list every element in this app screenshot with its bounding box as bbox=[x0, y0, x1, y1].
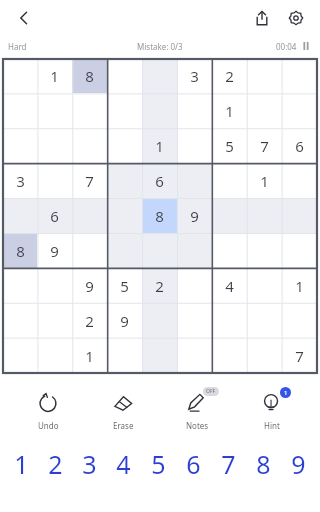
button[interactable]: Undo bbox=[16, 386, 80, 433]
button[interactable] bbox=[282, 303, 317, 338]
button[interactable]: 9 bbox=[107, 303, 142, 338]
button[interactable] bbox=[177, 338, 212, 373]
button[interactable] bbox=[282, 233, 317, 268]
button[interactable] bbox=[3, 268, 37, 303]
button[interactable]: 7 bbox=[211, 447, 246, 485]
button[interactable] bbox=[37, 268, 72, 303]
button[interactable] bbox=[212, 198, 247, 233]
button[interactable]: 5 bbox=[141, 447, 176, 485]
button[interactable] bbox=[177, 93, 212, 128]
button[interactable]: 6 bbox=[37, 198, 72, 233]
button[interactable]: 8 bbox=[246, 447, 281, 485]
button[interactable] bbox=[107, 93, 142, 128]
button[interactable] bbox=[37, 163, 72, 198]
button[interactable] bbox=[247, 303, 282, 338]
button[interactable]: 1 bbox=[240, 386, 304, 433]
button[interactable] bbox=[177, 128, 212, 163]
button[interactable]: 2 bbox=[212, 59, 247, 93]
button[interactable]: 3 bbox=[72, 447, 106, 485]
button[interactable] bbox=[3, 59, 37, 93]
button[interactable] bbox=[247, 338, 282, 373]
button[interactable]: 7 bbox=[72, 163, 107, 198]
button[interactable]: 1 bbox=[247, 163, 282, 198]
button[interactable] bbox=[247, 93, 282, 128]
button[interactable]: 8 bbox=[142, 198, 177, 233]
button[interactable] bbox=[177, 233, 212, 268]
button[interactable]: 1 bbox=[72, 338, 107, 373]
button[interactable] bbox=[107, 59, 142, 93]
button[interactable] bbox=[142, 59, 177, 93]
button[interactable] bbox=[247, 59, 282, 93]
staticText: Mistake: 0/3 bbox=[137, 41, 183, 52]
button[interactable] bbox=[282, 163, 317, 198]
button[interactable] bbox=[177, 163, 212, 198]
button[interactable]: Pause bbox=[300, 40, 312, 52]
button[interactable]: 9 bbox=[177, 198, 212, 233]
button[interactable] bbox=[3, 128, 37, 163]
button[interactable] bbox=[37, 93, 72, 128]
button[interactable]: 6 bbox=[142, 163, 177, 198]
button[interactable] bbox=[212, 163, 247, 198]
button[interactable]: Share bbox=[246, 2, 278, 34]
button[interactable] bbox=[72, 128, 107, 163]
button[interactable]: 9 bbox=[37, 233, 72, 268]
button[interactable] bbox=[142, 338, 177, 373]
button[interactable] bbox=[3, 338, 37, 373]
button[interactable]: 2 bbox=[72, 303, 107, 338]
button[interactable] bbox=[72, 198, 107, 233]
button[interactable]: 3 bbox=[177, 59, 212, 93]
button[interactable] bbox=[37, 128, 72, 163]
button[interactable]: 1 bbox=[4, 447, 38, 485]
button[interactable] bbox=[107, 338, 142, 373]
button[interactable]: Erase bbox=[91, 386, 155, 433]
button[interactable] bbox=[247, 233, 282, 268]
button[interactable] bbox=[177, 268, 212, 303]
button[interactable] bbox=[177, 303, 212, 338]
button[interactable] bbox=[282, 198, 317, 233]
button[interactable]: 1 bbox=[37, 59, 72, 93]
button[interactable]: Back bbox=[8, 2, 40, 34]
button[interactable]: 4 bbox=[212, 268, 247, 303]
button[interactable]: Settings bbox=[280, 2, 312, 34]
button[interactable]: 5 bbox=[212, 128, 247, 163]
button[interactable] bbox=[142, 233, 177, 268]
button[interactable]: 9 bbox=[72, 268, 107, 303]
button[interactable] bbox=[3, 303, 37, 338]
button[interactable] bbox=[212, 303, 247, 338]
button[interactable] bbox=[247, 268, 282, 303]
button[interactable]: 1 bbox=[142, 128, 177, 163]
button[interactable] bbox=[72, 233, 107, 268]
button[interactable] bbox=[37, 303, 72, 338]
button[interactable] bbox=[107, 128, 142, 163]
button[interactable]: 1 bbox=[282, 268, 317, 303]
button[interactable] bbox=[72, 93, 107, 128]
button[interactable]: OFF bbox=[165, 386, 229, 433]
button[interactable]: 8 bbox=[72, 59, 107, 93]
button[interactable]: 7 bbox=[247, 128, 282, 163]
button[interactable]: 5 bbox=[107, 268, 142, 303]
button[interactable]: 8 bbox=[3, 233, 37, 268]
staticText: 8 bbox=[155, 206, 164, 226]
button[interactable]: 9 bbox=[281, 447, 316, 485]
button[interactable] bbox=[107, 163, 142, 198]
button[interactable]: 2 bbox=[38, 447, 72, 485]
button[interactable] bbox=[212, 233, 247, 268]
button[interactable]: 6 bbox=[282, 128, 317, 163]
button[interactable] bbox=[3, 198, 37, 233]
button[interactable]: 6 bbox=[176, 447, 211, 485]
button[interactable] bbox=[282, 93, 317, 128]
button[interactable] bbox=[3, 93, 37, 128]
button[interactable] bbox=[107, 198, 142, 233]
button[interactable]: 4 bbox=[106, 447, 141, 485]
button[interactable]: 2 bbox=[142, 268, 177, 303]
button[interactable]: 3 bbox=[3, 163, 37, 198]
button[interactable] bbox=[212, 338, 247, 373]
button[interactable] bbox=[37, 338, 72, 373]
button[interactable]: 7 bbox=[282, 338, 317, 373]
button[interactable] bbox=[107, 233, 142, 268]
button[interactable] bbox=[282, 59, 317, 93]
button[interactable]: 1 bbox=[212, 93, 247, 128]
